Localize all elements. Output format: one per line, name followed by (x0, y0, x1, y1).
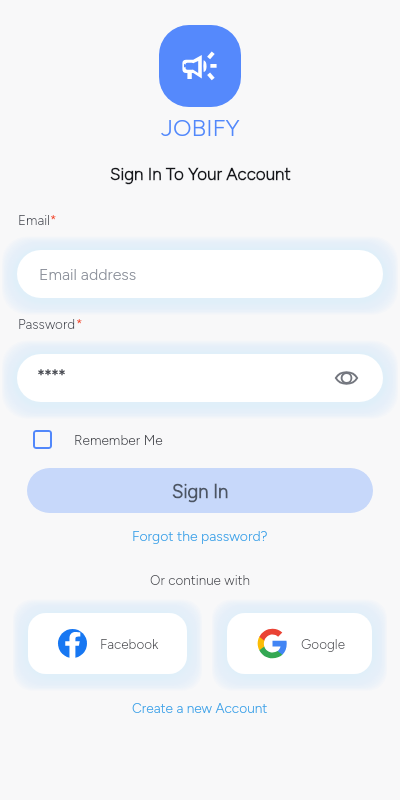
staticText: * (76, 316, 83, 332)
staticText: Remember Me (74, 432, 163, 448)
button[interactable]: Jobify logo (159, 25, 241, 107)
staticText: Google (301, 636, 346, 652)
staticText: Email address (39, 265, 137, 284)
staticText: Password (18, 316, 76, 332)
button[interactable]: Facebook (28, 613, 187, 674)
staticText: Sign In (172, 480, 229, 502)
staticText: Email (18, 212, 50, 228)
staticText: Forgot the password? (132, 528, 268, 545)
staticText: JOBIFY (161, 113, 240, 142)
button[interactable]: Email address (17, 250, 383, 298)
button[interactable]: Show password (17, 354, 383, 402)
staticText: Facebook (100, 636, 159, 652)
staticText: Create a new Account (132, 700, 268, 716)
staticText: Or continue with (150, 572, 251, 588)
button[interactable]: Create a new Account (132, 700, 268, 716)
button[interactable]: Forgot the password? (132, 528, 268, 545)
button[interactable]: Show password (332, 364, 360, 392)
staticText: Sign In To Your Account (110, 164, 291, 184)
button[interactable]: Remember Me (33, 430, 163, 449)
staticText: * (50, 212, 57, 228)
button[interactable]: Google (227, 613, 372, 674)
button[interactable]: Sign In (27, 468, 373, 513)
